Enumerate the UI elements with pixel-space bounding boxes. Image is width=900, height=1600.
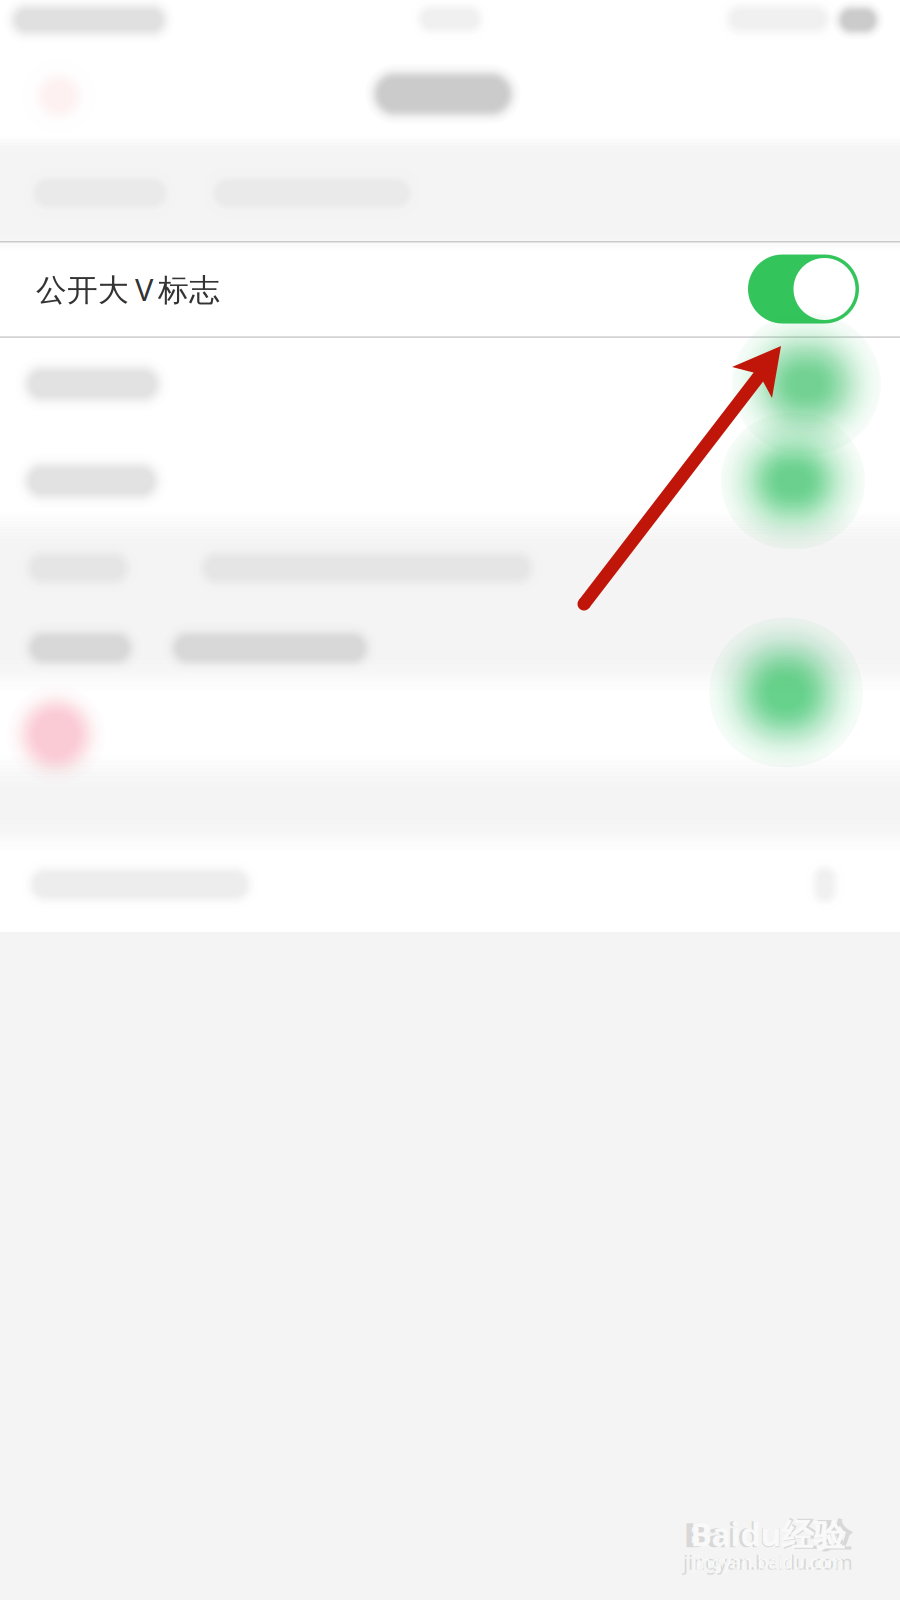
button[interactable] [0, 674, 900, 769]
staticText: Baidu经验 [690, 1513, 845, 1555]
button[interactable] [0, 336, 900, 431]
staticText: jingyan.baidu.com [692, 1550, 843, 1573]
staticText: 公开大 V 标志 [36, 269, 220, 309]
button[interactable] [0, 836, 900, 931]
button[interactable] [0, 433, 900, 528]
staticText: jingyan.baidu.com [683, 1549, 853, 1575]
button[interactable]: 公开大 V 标志 [0, 241, 900, 336]
staticText: Baidu经验 [683, 1511, 852, 1557]
